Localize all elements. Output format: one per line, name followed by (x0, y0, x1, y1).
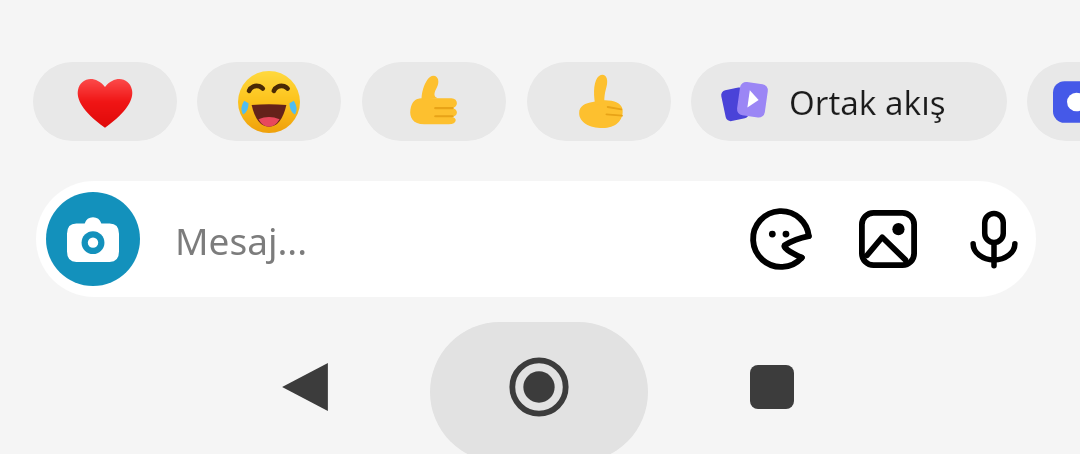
button[interactable]: Reaction (527, 62, 671, 141)
button[interactable]: Home (430, 322, 648, 454)
button[interactable]: Voice message (952, 197, 1036, 281)
button[interactable]: Back (255, 337, 355, 437)
button[interactable]: Gallery (846, 197, 930, 281)
button[interactable]: Ortak akış (691, 62, 1007, 141)
button[interactable]: Mesaj... (175, 215, 308, 265)
button[interactable]: Reaction (33, 62, 177, 141)
button[interactable]: Stickers (739, 197, 823, 281)
staticText: Ortak akış (789, 80, 946, 125)
button[interactable] (1027, 62, 1080, 141)
button[interactable]: Reaction (362, 62, 506, 141)
button[interactable]: Home (489, 337, 589, 437)
button[interactable]: Camera (46, 192, 140, 286)
button[interactable]: Recent apps (722, 337, 822, 437)
button[interactable]: Reaction (197, 62, 341, 141)
